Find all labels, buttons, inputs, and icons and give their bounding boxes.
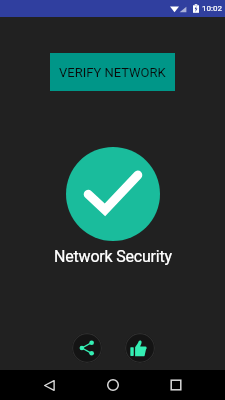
staticText: VERIFY NETWORK [59, 65, 166, 80]
button[interactable]: Back [35, 371, 63, 399]
button[interactable]: Like [125, 333, 155, 363]
button[interactable]: Share [72, 333, 102, 363]
button[interactable]: Home [99, 371, 127, 399]
button[interactable]: Recents [162, 371, 190, 399]
staticText: Network Security [54, 247, 172, 266]
button[interactable]: VERIFY NETWORK [50, 53, 175, 91]
staticText: 10:02 [202, 4, 222, 13]
button[interactable]: Network secure [66, 147, 160, 241]
